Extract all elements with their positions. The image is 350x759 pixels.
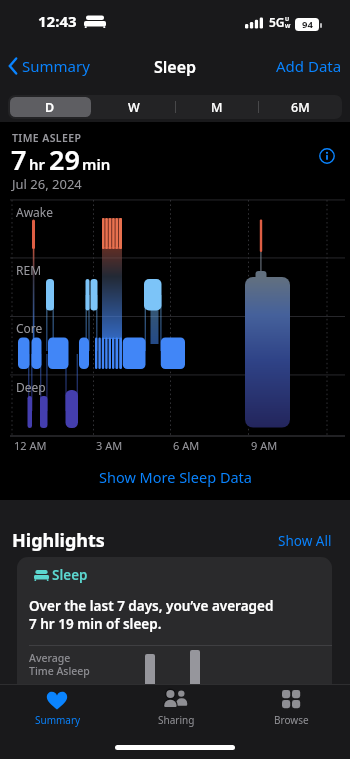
- staticText: 94: [302, 18, 313, 31]
- staticText: U: [285, 15, 290, 22]
- staticText: Summary: [35, 713, 81, 727]
- staticText: Summary: [22, 56, 90, 76]
- staticText: 29: [49, 141, 80, 178]
- staticText: Average Time Asleep: [29, 651, 90, 678]
- staticText: hr: [29, 154, 46, 174]
- staticText: Deep: [16, 379, 46, 395]
- staticText: Browse: [274, 713, 309, 727]
- staticText: TIME ASLEEP: [12, 131, 82, 145]
- button[interactable]: 6M: [280, 95, 320, 119]
- button[interactable]: Show More Sleep Data: [0, 466, 350, 488]
- staticText: W: [128, 99, 140, 116]
- button[interactable]: W: [114, 95, 154, 119]
- button[interactable]: Show All: [252, 531, 332, 551]
- button[interactable]: Summary: [20, 686, 94, 728]
- staticText: 9 AM: [251, 438, 278, 453]
- button[interactable]: Sharing: [140, 686, 210, 728]
- button[interactable]: Browse: [258, 686, 326, 728]
- button[interactable]: Sleep: [17, 557, 332, 759]
- button[interactable]: [316, 145, 338, 167]
- staticText: W: [285, 22, 291, 29]
- staticText: 7: [11, 141, 27, 178]
- staticText: M: [211, 99, 223, 116]
- staticText: Sleep: [52, 566, 88, 584]
- staticText: Highlights: [12, 528, 105, 553]
- staticText: 5G: [269, 14, 285, 30]
- staticText: Show More Sleep Data: [99, 467, 252, 487]
- staticText: 6M: [291, 99, 310, 116]
- staticText: 12 AM: [14, 438, 47, 453]
- staticText: 3 AM: [96, 438, 123, 453]
- button[interactable]: Summary: [8, 56, 90, 76]
- button[interactable]: Add Data: [268, 56, 342, 76]
- staticText: Over the last 7 days, you’ve averaged 7 …: [29, 597, 274, 633]
- staticText: Show All: [278, 532, 332, 550]
- staticText: Core: [16, 320, 43, 336]
- button[interactable]: M: [197, 95, 237, 119]
- button[interactable]: D: [30, 95, 70, 119]
- staticText: Sharing: [158, 713, 195, 727]
- staticText: Add Data: [276, 56, 342, 76]
- staticText: Jul 26, 2024: [12, 175, 82, 193]
- staticText: Awake: [16, 204, 54, 220]
- staticText: Sleep: [154, 56, 197, 76]
- staticText: 12:43: [38, 11, 77, 31]
- staticText: D: [45, 99, 55, 116]
- staticText: min: [82, 154, 111, 174]
- staticText: 6 AM: [173, 438, 200, 453]
- staticText: REM: [16, 262, 42, 278]
